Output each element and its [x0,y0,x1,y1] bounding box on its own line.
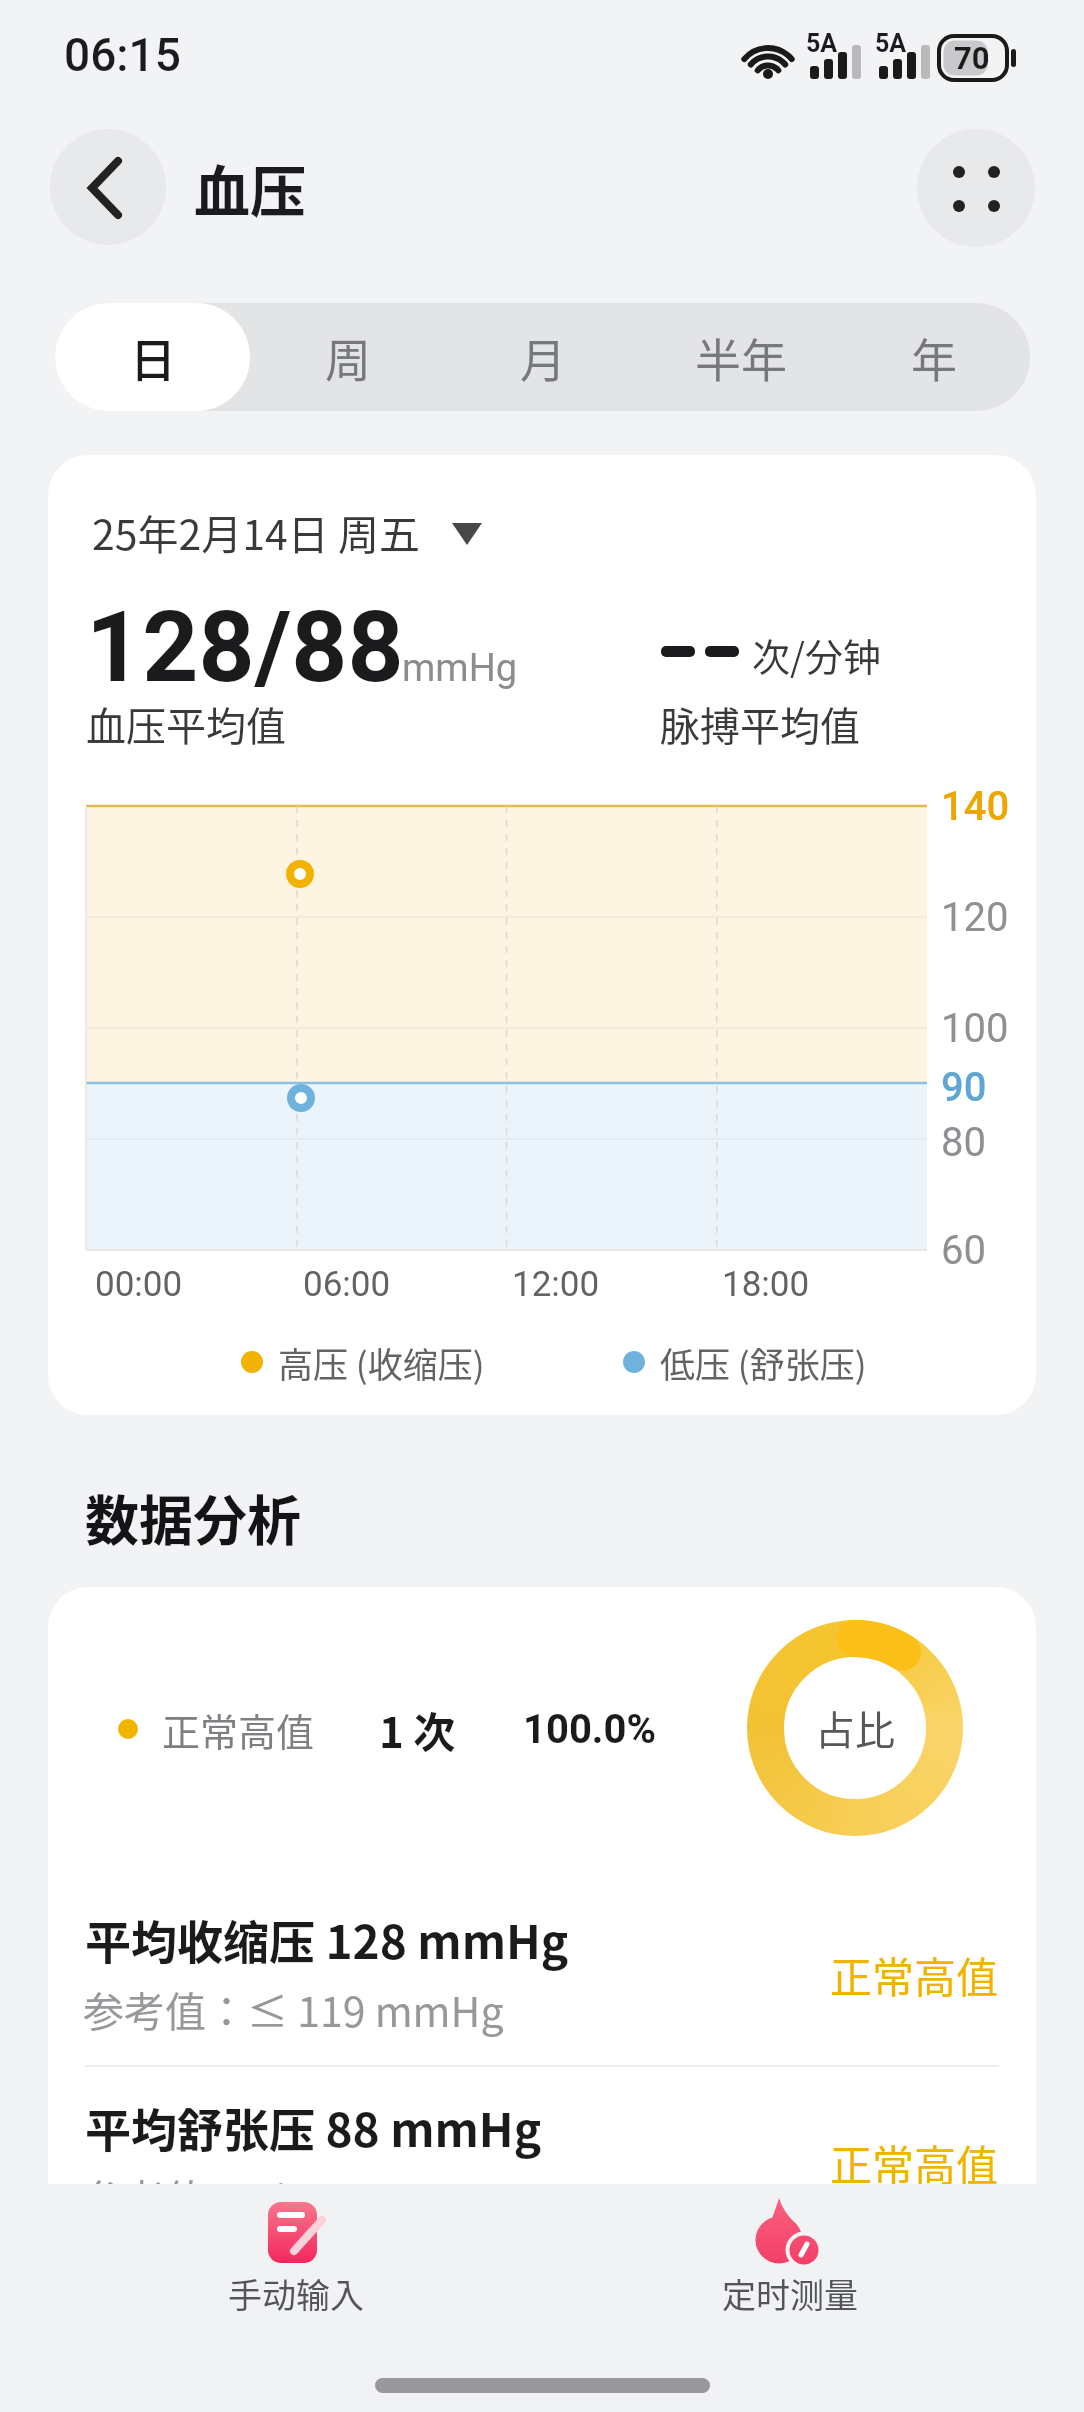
staticText: 60 [941,1227,986,1274]
staticText: 平均舒张压 88 mmHg [85,2094,542,2161]
button[interactable] [180,2190,410,2320]
staticText: 140 [941,783,1010,830]
staticText: 次/分钟 [752,627,881,682]
staticText: 128/88 [86,590,404,705]
button[interactable] [835,303,1030,411]
staticText: 定时测量 [722,2269,858,2318]
button[interactable] [250,303,445,411]
staticText: 参考值：≤ 119 mmHg [83,1979,504,2038]
staticText: 血压 [194,147,306,228]
staticText: 100.0% [523,1706,656,1753]
staticText: 高压 (收缩压) [278,1337,485,1388]
staticText: 手动输入 [228,2269,364,2318]
staticText: 5A [875,29,907,58]
staticText: 120 [941,894,1009,941]
staticText: 低压 (舒张压) [660,1337,867,1388]
button[interactable] [640,303,835,411]
staticText: 正常高值 [830,2132,999,2193]
staticText: 正常高值 [830,1944,999,2005]
staticText: 脉搏平均值 [660,695,860,753]
staticText: 12:00 [512,1264,600,1305]
staticText: 占比 [815,1699,895,1757]
staticText: 5A [806,29,838,58]
staticText: 血压平均值 [86,695,286,753]
staticText: 正常高值 [162,1702,315,1757]
staticText: 数据分析 [85,1478,301,1556]
staticText: 1 次 [379,1699,456,1760]
staticText: 平均收缩压 128 mmHg [85,1906,569,1973]
button[interactable] [445,303,640,411]
button[interactable] [50,129,166,245]
button[interactable] [85,500,505,560]
staticText: 周 [325,324,371,391]
staticText: 日 [130,324,176,391]
staticText: 月 [520,324,566,391]
staticText: 100 [941,1005,1009,1052]
staticText: 70 [954,40,990,76]
button[interactable] [917,129,1035,247]
staticText: mmHg [402,646,518,691]
staticText: 00:00 [95,1264,183,1305]
button[interactable] [672,2190,902,2320]
staticText: 18:00 [722,1264,810,1305]
staticText: 参考值：≤ 79 mmHg [83,2167,481,2226]
staticText: 06:15 [64,28,181,82]
staticText: 年 [911,324,957,391]
staticText: 90 [941,1064,987,1111]
staticText: 25年2月14日 周五 [92,502,420,561]
button[interactable] [55,303,250,411]
staticText: 80 [941,1119,986,1166]
staticText: 06:00 [303,1264,391,1305]
staticText: 半年 [695,324,787,391]
